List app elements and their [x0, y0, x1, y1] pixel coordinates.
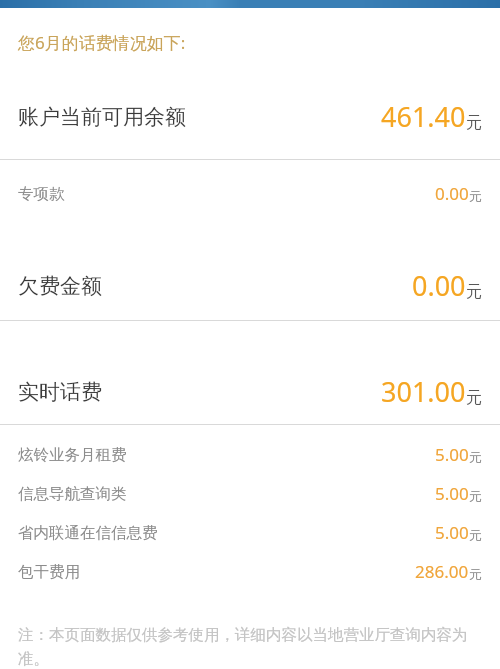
staticText: 元 [469, 188, 482, 204]
staticText: 5.00 [435, 521, 469, 544]
staticText: 5.00 [435, 443, 469, 466]
button[interactable]: 包干费用 [0, 560, 500, 583]
button[interactable]: 炫铃业务月租费 [0, 443, 500, 466]
staticText: 信息导航查询类 [18, 484, 127, 504]
staticText: 5.00 [435, 482, 469, 505]
staticText: 301.00 [381, 373, 466, 410]
staticText: 461.40 [381, 98, 466, 135]
staticText: 实时话费 [18, 379, 102, 405]
button[interactable]: 专项款 [0, 182, 500, 205]
staticText: 元 [466, 282, 482, 302]
staticText: 注：本页面数据仅供参考使用，详细内容以当地营业厅查询内容为准。 [18, 625, 484, 669]
staticText: 欠费金额 [18, 273, 102, 299]
staticText: 286.00 [415, 560, 469, 583]
staticText: 元 [469, 566, 482, 582]
button[interactable]: 省内联通在信信息费 [0, 521, 500, 544]
button[interactable]: 实时话费 [0, 373, 500, 410]
staticText: 0.00 [412, 267, 466, 304]
staticText: 您6月的话费情况如下: [18, 31, 186, 54]
staticText: 元 [466, 388, 482, 408]
button[interactable]: 欠费金额 [0, 267, 500, 304]
staticText: 0.00 [435, 182, 469, 205]
staticText: 元 [466, 113, 482, 133]
staticText: 炫铃业务月租费 [18, 445, 127, 465]
staticText: 元 [469, 527, 482, 543]
staticText: 元 [469, 449, 482, 465]
staticText: 元 [469, 488, 482, 504]
staticText: 专项款 [18, 184, 65, 204]
staticText: 省内联通在信信息费 [18, 523, 158, 543]
button[interactable]: 账户当前可用余额 [0, 98, 500, 135]
button[interactable]: 信息导航查询类 [0, 482, 500, 505]
staticText: 包干费用 [18, 562, 80, 582]
staticText: 账户当前可用余额 [18, 104, 186, 130]
